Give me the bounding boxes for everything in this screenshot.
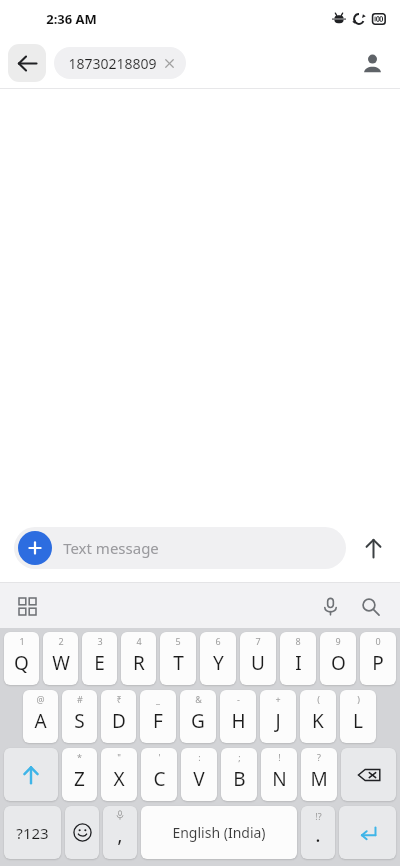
button[interactable]: 5 <box>160 632 196 685</box>
staticText: ₹ <box>116 693 122 705</box>
staticText: E <box>94 650 105 676</box>
staticText: 5 <box>175 635 181 647</box>
button[interactable]: @ <box>23 690 58 743</box>
button[interactable]: ) <box>340 690 376 743</box>
staticText: 3 <box>97 635 103 647</box>
button[interactable]: Backspace <box>341 748 396 801</box>
staticText: T <box>173 650 184 676</box>
button[interactable]: 0 <box>360 632 396 685</box>
button[interactable]: ! <box>261 748 297 801</box>
button[interactable]: 7 <box>240 632 276 685</box>
staticText: B <box>233 766 246 792</box>
staticText: !? <box>315 810 322 822</box>
staticText: . <box>315 821 321 848</box>
button[interactable]: ; <box>221 748 257 801</box>
staticText: Q <box>14 650 29 676</box>
button[interactable]: Comma <box>103 806 137 859</box>
staticText: H <box>231 708 246 734</box>
staticText: Z <box>74 766 85 792</box>
button[interactable]: 6 <box>200 632 236 685</box>
button[interactable]: Send <box>346 521 400 575</box>
staticText: G <box>191 708 205 734</box>
staticText: # <box>77 693 83 705</box>
staticText: ! <box>278 751 281 763</box>
staticText: * <box>77 751 82 763</box>
staticText: English (India) <box>172 823 266 842</box>
button[interactable]: # <box>62 690 97 743</box>
button[interactable]: Enter <box>339 806 396 859</box>
staticText: 7 <box>255 635 261 647</box>
button[interactable]: ( <box>300 690 336 743</box>
staticText: @ <box>36 693 45 705</box>
staticText: F <box>153 708 163 734</box>
staticText: V <box>193 766 205 792</box>
staticText: A <box>34 708 47 734</box>
button[interactable]: 18730218809 <box>54 47 186 79</box>
button[interactable]: Back <box>8 44 46 82</box>
button[interactable]: Contact details <box>350 41 394 85</box>
button[interactable]: ? <box>301 748 337 801</box>
staticText: & <box>195 693 202 705</box>
button[interactable]: Add attachment <box>18 531 52 565</box>
button[interactable]: - <box>220 690 256 743</box>
button[interactable]: & <box>180 690 216 743</box>
staticText: - <box>237 693 240 705</box>
staticText: W <box>52 650 70 676</box>
staticText: + <box>275 693 281 705</box>
button[interactable]: ₹ <box>101 690 136 743</box>
button[interactable]: Emoji <box>65 806 99 859</box>
button[interactable]: 8 <box>280 632 316 685</box>
button[interactable]: 4 <box>121 632 156 685</box>
staticText: 1 <box>19 635 25 647</box>
button[interactable]: Period <box>301 806 335 859</box>
staticText: 8 <box>295 635 301 647</box>
button[interactable]: English (India) <box>141 806 297 859</box>
button[interactable]: ?123 <box>4 806 61 859</box>
button[interactable]: Toolbar <box>8 587 46 625</box>
staticText: N <box>272 766 287 792</box>
staticText: I <box>295 650 302 676</box>
staticText: , <box>117 821 123 848</box>
button[interactable]: : <box>181 748 217 801</box>
staticText: R <box>133 650 145 676</box>
button[interactable]: " <box>101 748 137 801</box>
staticText: 2 <box>58 635 64 647</box>
button[interactable]: 9 <box>320 632 356 685</box>
staticText: 4 <box>136 635 142 647</box>
button[interactable]: ' <box>141 748 177 801</box>
staticText: S <box>74 708 85 734</box>
staticText: X <box>113 766 125 792</box>
staticText: C <box>153 766 166 792</box>
staticText: U <box>251 650 265 676</box>
staticText: ; <box>238 751 241 763</box>
staticText: L <box>353 708 363 734</box>
button[interactable]: 2 <box>43 632 78 685</box>
staticText: " <box>117 751 121 763</box>
staticText: 18730218809 <box>68 54 157 73</box>
staticText: 6 <box>215 635 221 647</box>
button[interactable]: Voice input <box>310 586 350 626</box>
staticText: J <box>275 708 281 734</box>
staticText: K <box>312 708 324 734</box>
button[interactable]: Shift <box>4 748 58 801</box>
staticText: ( <box>317 693 320 705</box>
staticText: _ <box>156 693 160 705</box>
button[interactable]: 3 <box>82 632 117 685</box>
button[interactable]: * <box>62 748 97 801</box>
button[interactable]: + <box>260 690 296 743</box>
staticText: ' <box>158 751 161 763</box>
staticText: 0 <box>375 635 381 647</box>
staticText: M <box>310 766 328 792</box>
button[interactable]: Add attachment <box>14 527 346 569</box>
staticText: D <box>112 708 126 734</box>
button[interactable]: Search <box>350 586 390 626</box>
staticText: P <box>372 650 384 676</box>
button[interactable]: _ <box>140 690 176 743</box>
staticText: ?123 <box>16 823 49 843</box>
staticText: ? <box>317 751 321 763</box>
staticText: O <box>331 650 346 676</box>
staticText: ) <box>357 693 360 705</box>
staticText: : <box>198 751 201 763</box>
staticText: Y <box>213 650 224 676</box>
button[interactable]: 1 <box>4 632 39 685</box>
